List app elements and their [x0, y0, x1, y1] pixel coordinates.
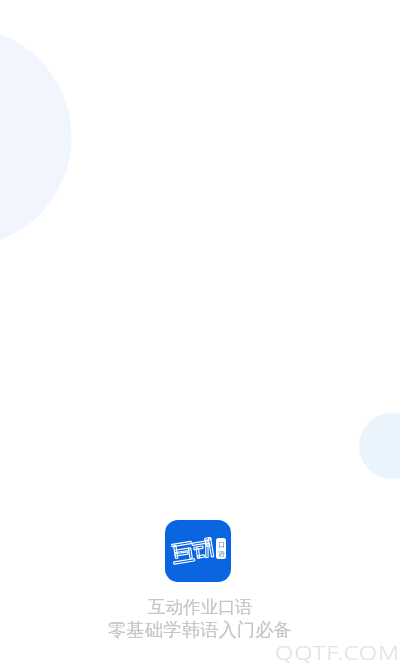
button[interactable]: 互动作业口语 app logo: [165, 520, 231, 582]
staticText: QQTF.COM: [275, 639, 400, 666]
staticText: 零基础学韩语入门必备: [108, 618, 292, 641]
staticText: 口 语: [218, 540, 225, 558]
staticText: 互动作业口语: [148, 596, 253, 618]
